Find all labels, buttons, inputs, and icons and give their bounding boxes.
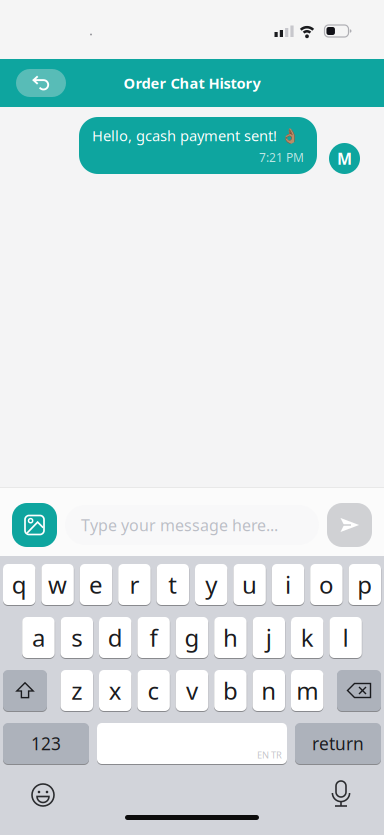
button[interactable]: n bbox=[253, 670, 285, 711]
staticText: p bbox=[357, 569, 372, 600]
staticText: i bbox=[285, 569, 291, 600]
staticText: l bbox=[343, 622, 349, 653]
staticText: a bbox=[32, 622, 45, 653]
staticText: z bbox=[71, 675, 82, 706]
staticText: k bbox=[301, 622, 314, 653]
staticText: 123 bbox=[31, 732, 61, 755]
button[interactable]: Dictation bbox=[331, 781, 351, 809]
button[interactable]: z bbox=[61, 670, 93, 711]
staticText: o bbox=[319, 569, 334, 600]
staticText: 7:21 PM bbox=[259, 149, 304, 165]
staticText: c bbox=[148, 675, 160, 706]
button[interactable]: d bbox=[99, 617, 131, 658]
button[interactable]: Space bbox=[97, 723, 287, 764]
staticText: f bbox=[150, 622, 158, 653]
button[interactable]: u bbox=[233, 564, 266, 605]
staticText: EN TR bbox=[257, 749, 282, 761]
button[interactable]: Delete bbox=[337, 670, 381, 711]
staticText: x bbox=[109, 675, 122, 706]
button[interactable]: g bbox=[176, 617, 208, 658]
button[interactable]: b bbox=[214, 670, 247, 711]
button[interactable]: j bbox=[253, 617, 285, 658]
staticText: n bbox=[261, 675, 276, 706]
button[interactable]: p bbox=[349, 564, 381, 605]
button[interactable]: Attach photo bbox=[12, 503, 57, 547]
button[interactable]: return bbox=[295, 723, 381, 764]
button[interactable]: k bbox=[291, 617, 323, 658]
button[interactable]: t bbox=[157, 564, 189, 605]
button[interactable]: l bbox=[329, 617, 362, 658]
staticText: r bbox=[129, 569, 139, 600]
staticText: g bbox=[184, 622, 199, 653]
button[interactable]: w bbox=[41, 564, 74, 605]
staticText: y bbox=[205, 569, 217, 600]
button[interactable]: v bbox=[176, 670, 208, 711]
button[interactable]: r bbox=[118, 564, 151, 605]
staticText: j bbox=[266, 622, 272, 653]
staticText: q bbox=[12, 569, 27, 600]
button[interactable]: m bbox=[291, 670, 323, 711]
button[interactable]: y bbox=[195, 564, 227, 605]
button[interactable]: h bbox=[214, 617, 247, 658]
staticText: Type your message here... bbox=[81, 514, 278, 536]
button[interactable]: a bbox=[22, 617, 55, 658]
staticText: d bbox=[108, 622, 123, 653]
button[interactable]: o bbox=[310, 564, 343, 605]
button[interactable]: Emoji bbox=[31, 783, 55, 807]
staticText: w bbox=[48, 569, 67, 600]
staticText: s bbox=[71, 622, 82, 653]
staticText: return bbox=[312, 732, 364, 755]
staticText: u bbox=[242, 569, 257, 600]
button[interactable]: Send bbox=[327, 503, 372, 547]
staticText: Order Chat History bbox=[123, 73, 260, 93]
button[interactable]: f bbox=[137, 617, 170, 658]
button[interactable]: q bbox=[3, 564, 35, 605]
button[interactable]: i bbox=[272, 564, 304, 605]
button[interactable]: 123 bbox=[3, 723, 89, 764]
button[interactable]: c bbox=[137, 670, 170, 711]
button[interactable]: e bbox=[80, 564, 112, 605]
staticText: m bbox=[296, 675, 318, 706]
staticText: b bbox=[223, 675, 238, 706]
button[interactable]: s bbox=[61, 617, 93, 658]
staticText: t bbox=[168, 569, 177, 600]
staticText: h bbox=[223, 622, 238, 653]
staticText: M bbox=[337, 148, 352, 169]
button[interactable]: Back bbox=[16, 69, 66, 97]
button[interactable]: Type your message here... bbox=[65, 505, 319, 545]
button[interactable]: x bbox=[99, 670, 131, 711]
button[interactable]: Shift bbox=[3, 670, 47, 711]
staticText: e bbox=[89, 569, 103, 600]
staticText: v bbox=[186, 675, 198, 706]
staticText: Hello, gcash payment sent! 👌🏽 bbox=[92, 126, 299, 145]
